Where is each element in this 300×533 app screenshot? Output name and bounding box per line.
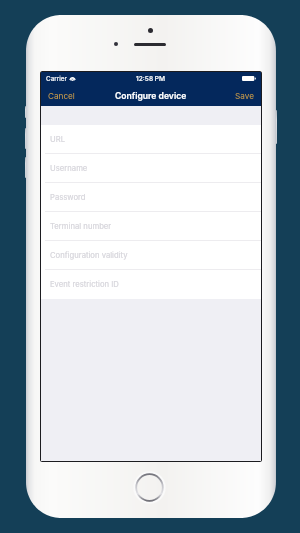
staticText: Event restriction ID — [50, 280, 119, 289]
button[interactable]: Terminal number — [41, 212, 261, 241]
staticText: Terminal number — [50, 222, 112, 231]
staticText: Save — [235, 91, 254, 101]
staticText: Cancel — [48, 91, 75, 101]
button[interactable]: URL — [41, 125, 261, 154]
staticText: Configuration validity — [50, 251, 128, 260]
staticText: URL — [50, 135, 66, 144]
staticText: Username — [50, 164, 88, 173]
staticText: Carrier — [46, 75, 67, 83]
button[interactable]: Event restriction ID — [41, 270, 261, 299]
staticText: Configure device — [115, 91, 187, 101]
staticText: 12:58 PM — [136, 75, 166, 83]
button[interactable]: Save — [228, 87, 261, 105]
button[interactable]: Configuration validity — [41, 241, 261, 270]
button[interactable]: Cancel — [41, 87, 82, 105]
button[interactable]: Password — [41, 183, 261, 212]
button[interactable]: Username — [41, 154, 261, 183]
staticText: Password — [50, 193, 86, 202]
